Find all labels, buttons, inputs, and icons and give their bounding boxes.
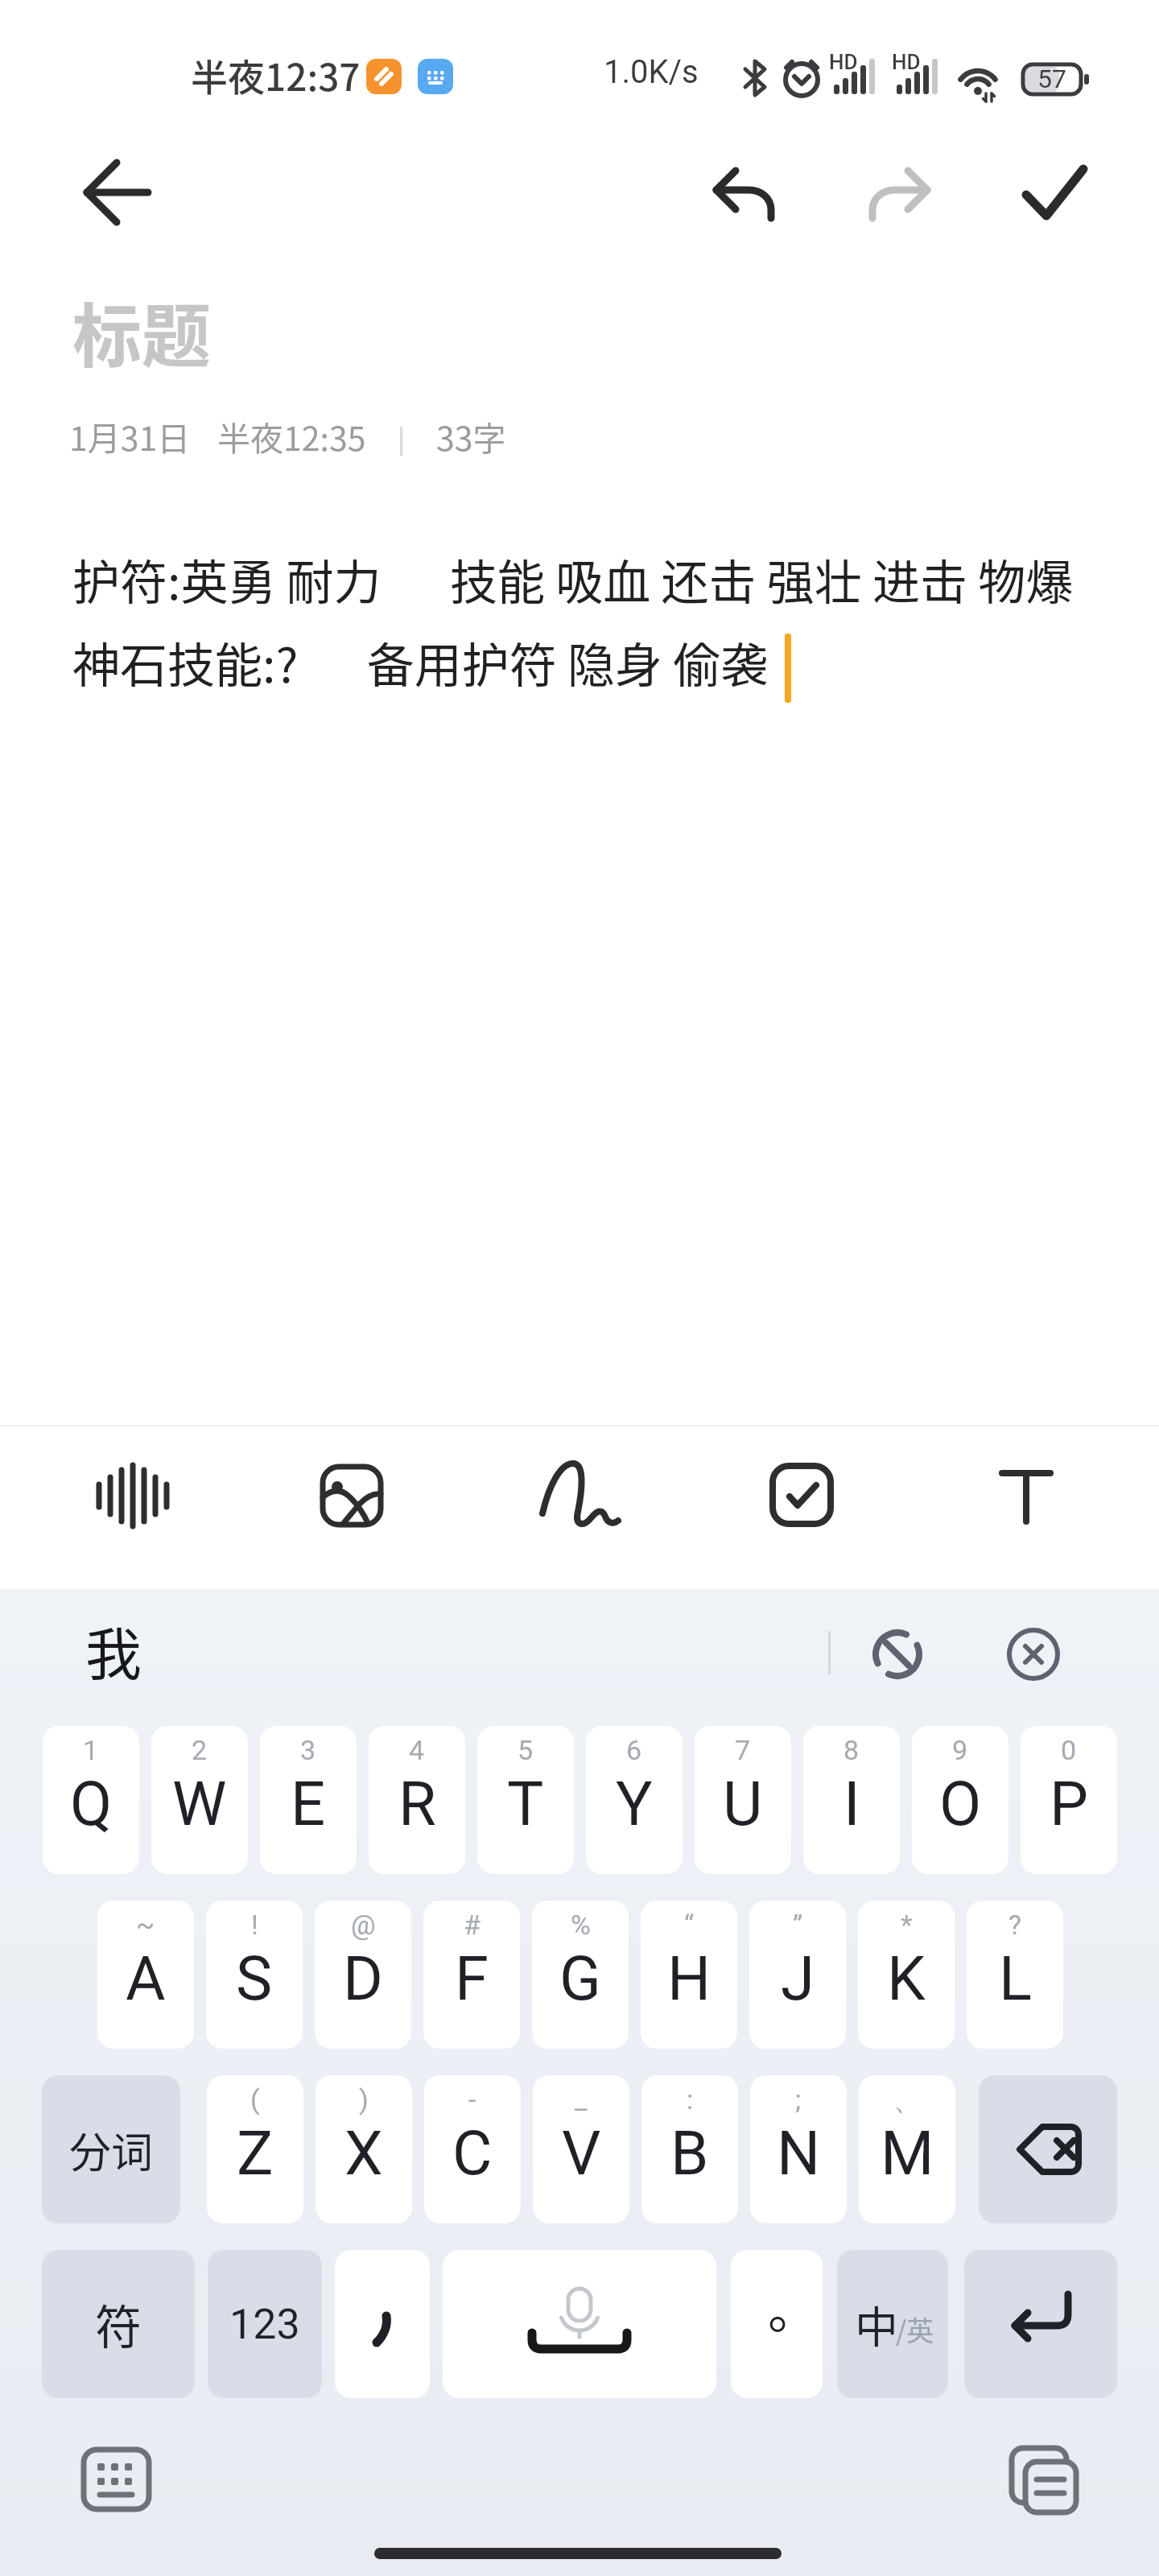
staticText: ” <box>793 1909 803 1941</box>
staticText: 3 <box>300 1734 316 1766</box>
button[interactable] <box>998 2435 1087 2524</box>
button[interactable]: : <box>641 2075 738 2223</box>
button[interactable] <box>303 1447 400 1544</box>
staticText: 2 <box>192 1734 208 1766</box>
button[interactable] <box>335 2250 430 2398</box>
staticText: ( <box>250 2083 260 2116</box>
button[interactable]: 符 <box>42 2250 195 2398</box>
button[interactable]: 。 <box>731 2250 823 2398</box>
staticText: 9 <box>952 1734 968 1766</box>
staticText: F <box>455 1942 489 2014</box>
staticText: 半夜12:35 <box>217 412 366 460</box>
staticText: G <box>559 1942 601 2014</box>
button[interactable]: 、 <box>859 2075 955 2223</box>
button[interactable] <box>1010 145 1099 233</box>
staticText: HD <box>829 50 858 74</box>
button[interactable] <box>531 1447 628 1544</box>
button[interactable]: ? <box>967 1901 1063 2049</box>
staticText: J <box>781 1942 815 2014</box>
staticText: 4 <box>409 1734 425 1766</box>
button[interactable] <box>703 152 784 233</box>
button[interactable]: _ <box>533 2075 629 2223</box>
button[interactable]: % <box>532 1901 629 2049</box>
staticText: 123 <box>229 2300 300 2349</box>
staticText: # <box>464 1909 481 1941</box>
button[interactable]: 分词 <box>42 2075 180 2223</box>
button[interactable]: 8 <box>803 1726 900 1874</box>
staticText: B <box>670 2117 709 2189</box>
staticText: H <box>667 1942 711 2014</box>
staticText: ; <box>795 2083 802 2116</box>
button[interactable]: ” <box>749 1901 846 2049</box>
button[interactable]: 0 <box>1021 1726 1117 1874</box>
button[interactable] <box>860 152 940 233</box>
staticText: C <box>452 2117 493 2189</box>
staticText: 33字 <box>436 412 506 460</box>
staticText: Z <box>237 2117 274 2189</box>
staticText: M <box>881 2117 934 2189</box>
staticText: 神石技能:? 备用护符 隐身 偷袭 <box>72 628 769 696</box>
staticText: S <box>236 1942 273 2014</box>
staticText: K <box>887 1942 926 2014</box>
staticText: D <box>343 1942 383 2014</box>
button[interactable] <box>85 1447 181 1544</box>
staticText: ? <box>1008 1909 1022 1941</box>
button[interactable] <box>993 1614 1074 1695</box>
staticText: 8 <box>843 1734 860 1766</box>
staticText: 1 <box>83 1734 99 1766</box>
button[interactable]: ) <box>316 2075 412 2223</box>
staticText: 5 <box>518 1734 534 1766</box>
button[interactable]: 4 <box>369 1726 465 1874</box>
button[interactable]: 2 <box>151 1726 248 1874</box>
staticText: - <box>468 2083 476 2116</box>
button[interactable] <box>443 2250 716 2398</box>
button[interactable]: # <box>423 1901 520 2049</box>
staticText: 分词 <box>69 2120 154 2180</box>
staticText: : <box>687 2083 694 2116</box>
button[interactable]: 3 <box>260 1726 357 1874</box>
button[interactable]: ~ <box>97 1901 194 2049</box>
staticText: 标题 <box>72 281 211 382</box>
button[interactable]: 123 <box>208 2250 322 2398</box>
button[interactable]: - <box>424 2075 521 2223</box>
button[interactable] <box>77 152 158 233</box>
button[interactable]: “ <box>641 1901 737 2049</box>
staticText: 半夜12:37 <box>191 48 361 102</box>
button[interactable] <box>76 2442 156 2522</box>
staticText: ~ <box>136 1909 155 1941</box>
staticText: 1.0K/s <box>604 53 699 91</box>
staticText: P <box>1050 1768 1088 1839</box>
button[interactable]: 7 <box>695 1726 791 1874</box>
button[interactable]: ; <box>750 2075 847 2223</box>
staticText: * <box>901 1909 913 1941</box>
button[interactable] <box>964 2250 1117 2398</box>
staticText: ! <box>251 1909 258 1941</box>
button[interactable]: 9 <box>912 1726 1008 1874</box>
staticText: 57 <box>1037 64 1066 94</box>
staticText: 护符:英勇 耐力 技能 吸血 还击 强壮 进击 物爆 <box>72 545 1074 613</box>
staticText: ) <box>359 2083 369 2116</box>
button[interactable]: 中 <box>837 2250 948 2398</box>
staticText: 中 <box>855 2293 898 2355</box>
button[interactable]: 1 <box>43 1726 139 1874</box>
staticText: /英 <box>896 2310 934 2349</box>
button[interactable] <box>759 1447 856 1544</box>
staticText: 7 <box>735 1734 751 1766</box>
button[interactable]: * <box>858 1901 955 2049</box>
staticText: Y <box>616 1768 653 1839</box>
staticText: X <box>344 2117 383 2189</box>
button[interactable]: @ <box>315 1901 411 2049</box>
button[interactable]: ! <box>206 1901 303 2049</box>
button[interactable] <box>979 2075 1117 2223</box>
button[interactable]: 5 <box>477 1726 574 1874</box>
staticText: % <box>571 1909 591 1941</box>
staticText: Q <box>70 1768 113 1839</box>
staticText: N <box>777 2117 821 2189</box>
staticText: @ <box>351 1909 376 1941</box>
button[interactable] <box>978 1447 1074 1544</box>
button[interactable]: 6 <box>586 1726 683 1874</box>
button[interactable] <box>857 1614 938 1695</box>
button[interactable]: ( <box>207 2075 303 2223</box>
staticText: E <box>291 1768 326 1839</box>
staticText: 、 <box>893 2083 921 2118</box>
